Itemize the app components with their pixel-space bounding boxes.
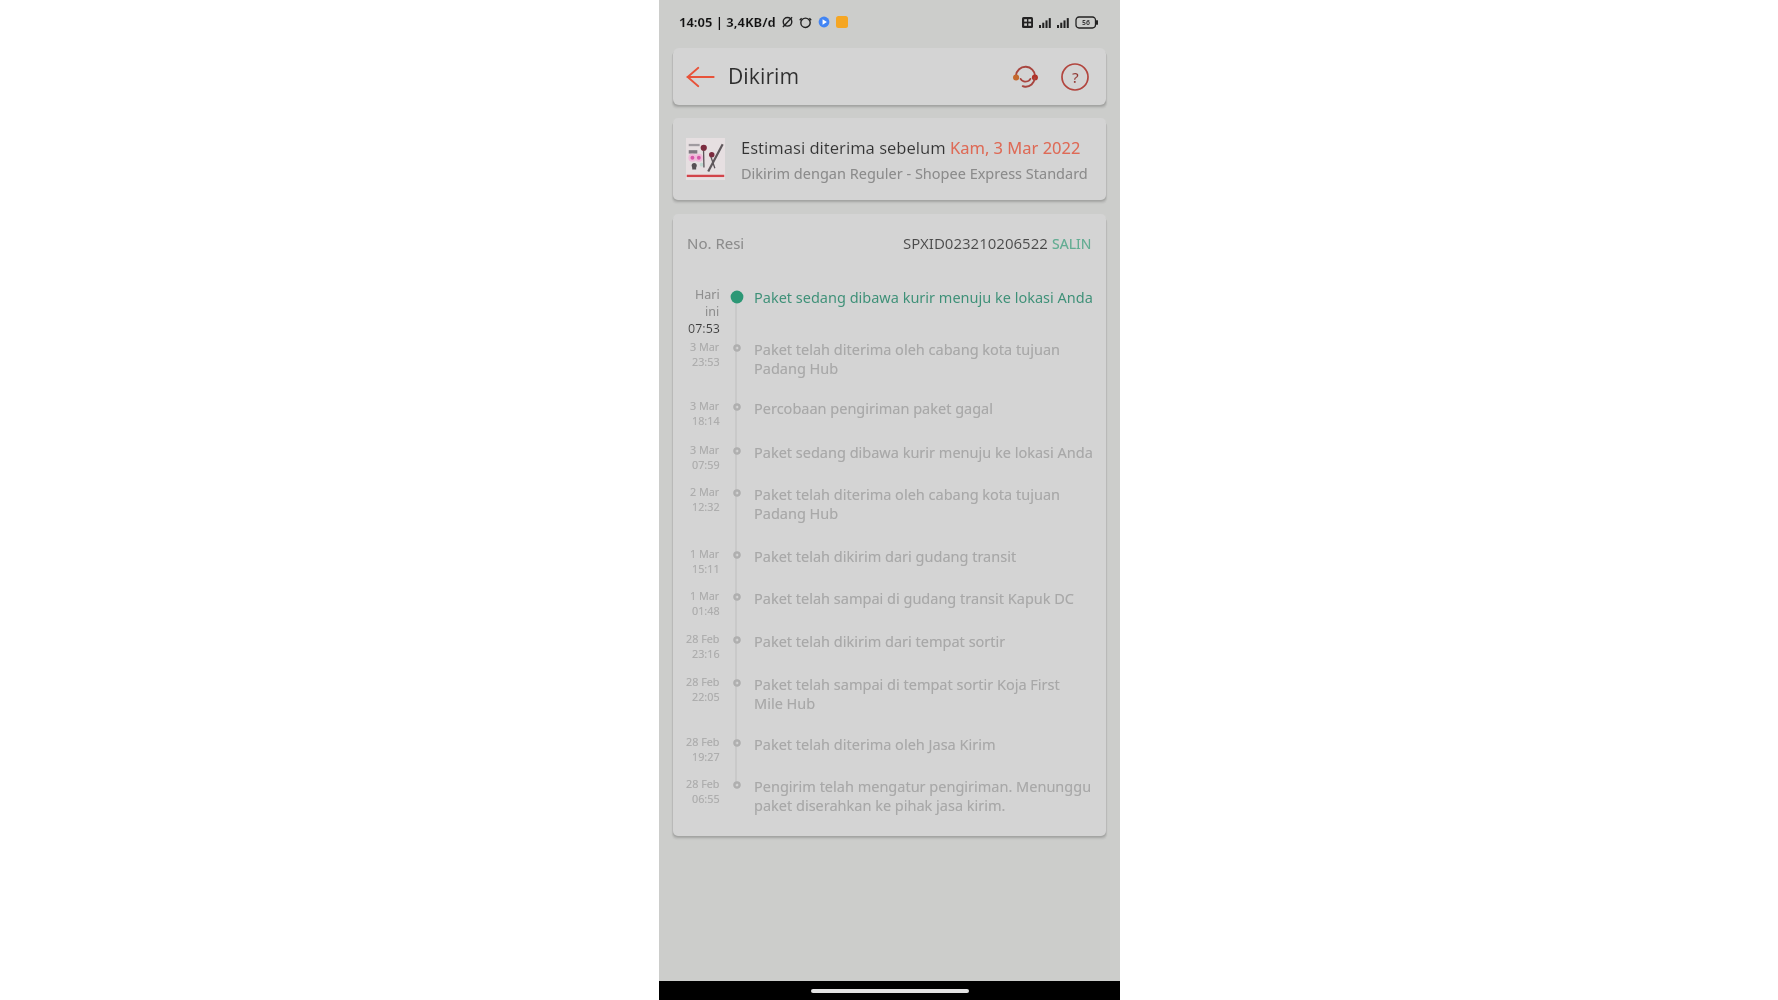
staticText: 15:11 (692, 561, 720, 576)
staticText: 28 Feb (686, 674, 720, 689)
staticText: 28 Feb (686, 776, 720, 791)
staticText: Paket telah dikirim dari tempat sortir (754, 631, 1094, 651)
staticText: Paket telah sampai di gudang transit Kap… (754, 588, 1094, 608)
staticText: 18:14 (692, 413, 720, 428)
staticText: Paket telah dikirim dari gudang transit (754, 546, 1094, 566)
staticText: 22:05 (692, 689, 720, 704)
staticText: 3 Mar (690, 442, 720, 457)
staticText: Kam, 3 Mar 2022 (950, 136, 1081, 158)
staticText: 23:16 (692, 646, 720, 661)
staticText: 07:59 (692, 457, 720, 472)
staticText: SPXID023210206522 (903, 233, 1052, 253)
staticText: SALIN (1052, 234, 1092, 253)
staticText: 07:53 (688, 320, 720, 337)
staticText: Estimasi diterima sebelum (741, 136, 950, 158)
staticText: 3 Mar (690, 339, 720, 354)
staticText: 1 Mar (690, 546, 720, 561)
staticText: Paket sedang dibawa kurir menuju ke loka… (754, 442, 1098, 462)
staticText: 28 Feb (686, 734, 720, 749)
staticText: 28 Feb (686, 631, 720, 646)
staticText: 06:55 (692, 791, 720, 806)
staticText: Hari (695, 286, 720, 303)
staticText: Dikirim dengan Reguler - Shopee Express … (741, 163, 1088, 183)
staticText: ? (1072, 67, 1079, 87)
staticText: Paket telah diterima oleh Jasa Kirim (754, 734, 1094, 754)
staticText: Dikirim (728, 62, 800, 91)
button[interactable]: Help (1057, 59, 1093, 95)
staticText: 2 Mar (690, 484, 720, 499)
staticText: 3 Mar (690, 398, 720, 413)
button[interactable]: SALIN (1052, 234, 1092, 253)
staticText: Paket sedang dibawa kurir menuju ke loka… (754, 287, 1099, 307)
staticText: 56 (1082, 18, 1091, 28)
staticText: 14:05 | 3,4KB/d (679, 13, 776, 31)
staticText: Paket telah diterima oleh cabang kota tu… (754, 484, 1094, 523)
staticText: Percobaan pengiriman paket gagal (754, 398, 1094, 418)
staticText: Pengirim telah mengatur pengiriman. Menu… (754, 776, 1098, 815)
staticText: 1 Mar (690, 588, 720, 603)
staticText: No. Resi (687, 233, 745, 253)
button[interactable]: Customer service (1007, 59, 1043, 95)
button[interactable]: Back (683, 60, 717, 94)
staticText: 12:32 (692, 499, 720, 514)
button[interactable]: Estimasi diterima sebelum (673, 118, 1106, 200)
staticText: ini (705, 303, 720, 320)
staticText: 19:27 (692, 749, 720, 764)
staticText: Paket telah sampai di tempat sortir Koja… (754, 674, 1084, 713)
staticText: Paket telah diterima oleh cabang kota tu… (754, 339, 1094, 378)
staticText: 23:53 (692, 354, 720, 369)
staticText: 01:48 (692, 603, 720, 618)
